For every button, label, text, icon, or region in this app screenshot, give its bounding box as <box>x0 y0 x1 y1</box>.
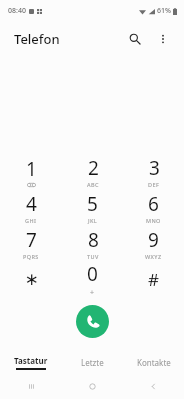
staticText: 7 <box>26 227 37 253</box>
staticText: Telefon <box>14 30 60 48</box>
staticText: 2 <box>88 155 99 181</box>
staticText: 61% <box>157 6 171 16</box>
button[interactable]: Letzte <box>62 350 123 374</box>
staticText: 5 <box>87 191 98 217</box>
staticText: Tastatur <box>14 355 48 366</box>
staticText: MNO <box>146 217 161 224</box>
staticText: Kontakte <box>137 357 171 368</box>
button[interactable]: Search <box>122 26 148 52</box>
staticText: 1 <box>26 156 37 182</box>
staticText: 3 <box>149 155 160 181</box>
button[interactable]: 7 <box>0 225 62 261</box>
button[interactable]: More options <box>150 26 176 52</box>
staticText: Letzte <box>81 357 104 368</box>
staticText: GHI <box>25 217 37 224</box>
button[interactable]: 4 <box>0 189 62 225</box>
staticText: 6 <box>148 191 159 217</box>
button[interactable]: Recents <box>0 374 62 399</box>
button[interactable]: 5 <box>62 189 123 225</box>
button[interactable]: Home <box>62 374 123 399</box>
staticText: 08:40 <box>8 6 26 16</box>
button[interactable]: Hash <box>123 261 184 297</box>
staticText: JKL <box>88 217 98 224</box>
button[interactable]: 6 <box>123 189 184 225</box>
button[interactable]: Tastatur <box>0 350 62 374</box>
staticText: 4 <box>26 191 37 217</box>
button[interactable]: Kontakte <box>123 350 184 374</box>
staticText: PQRS <box>23 253 39 260</box>
button[interactable]: Star <box>0 261 62 297</box>
staticText: TUV <box>87 253 99 260</box>
button[interactable]: 2 <box>62 153 123 189</box>
button[interactable]: 1 <box>0 153 62 189</box>
staticText: ∗ <box>24 269 39 289</box>
button[interactable]: 3 <box>123 153 184 189</box>
staticText: 8 <box>88 227 99 253</box>
button[interactable]: 9 <box>123 225 184 261</box>
staticText: ABC <box>87 181 99 188</box>
button[interactable]: 0 <box>62 261 123 297</box>
staticText: # <box>148 268 159 291</box>
staticText: WXYZ <box>145 253 162 260</box>
staticText: 9 <box>148 227 159 253</box>
button[interactable]: Call <box>76 305 109 338</box>
button[interactable]: 8 <box>62 225 123 261</box>
staticText: 0 <box>87 261 98 287</box>
staticText: DEF <box>148 181 160 188</box>
staticText: + <box>90 288 95 297</box>
